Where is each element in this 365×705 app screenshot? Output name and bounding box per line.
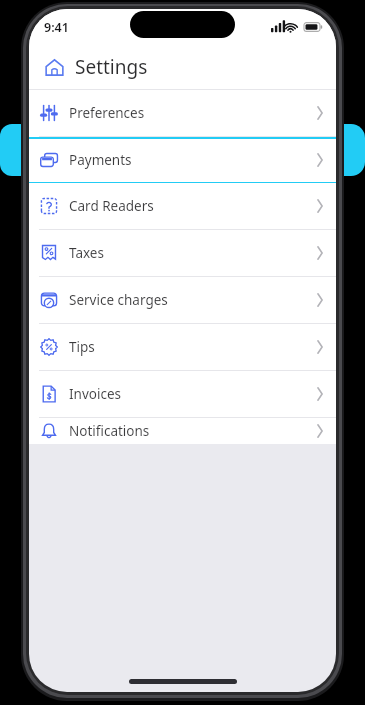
staticText: 9:41: [44, 19, 69, 36]
staticText: Preferences: [69, 104, 308, 122]
staticText: Card Readers: [69, 197, 308, 215]
button[interactable]: Invoices: [29, 371, 336, 417]
staticText: Tips: [69, 338, 308, 356]
button[interactable]: Notifications: [29, 418, 336, 444]
button[interactable]: Card Readers: [29, 183, 336, 229]
button[interactable]: Tips: [29, 324, 336, 370]
button[interactable]: Taxes: [29, 230, 336, 276]
button[interactable]: Service charges: [29, 277, 336, 323]
staticText: Payments: [69, 151, 308, 169]
staticText: Notifications: [69, 422, 308, 440]
button[interactable]: Home: [37, 50, 71, 84]
staticText: Service charges: [69, 291, 308, 309]
staticText: Settings: [75, 54, 148, 80]
button[interactable]: Payments: [29, 137, 336, 183]
button[interactable]: Preferences: [29, 90, 336, 136]
staticText: Invoices: [69, 385, 308, 403]
staticText: Taxes: [69, 244, 308, 262]
